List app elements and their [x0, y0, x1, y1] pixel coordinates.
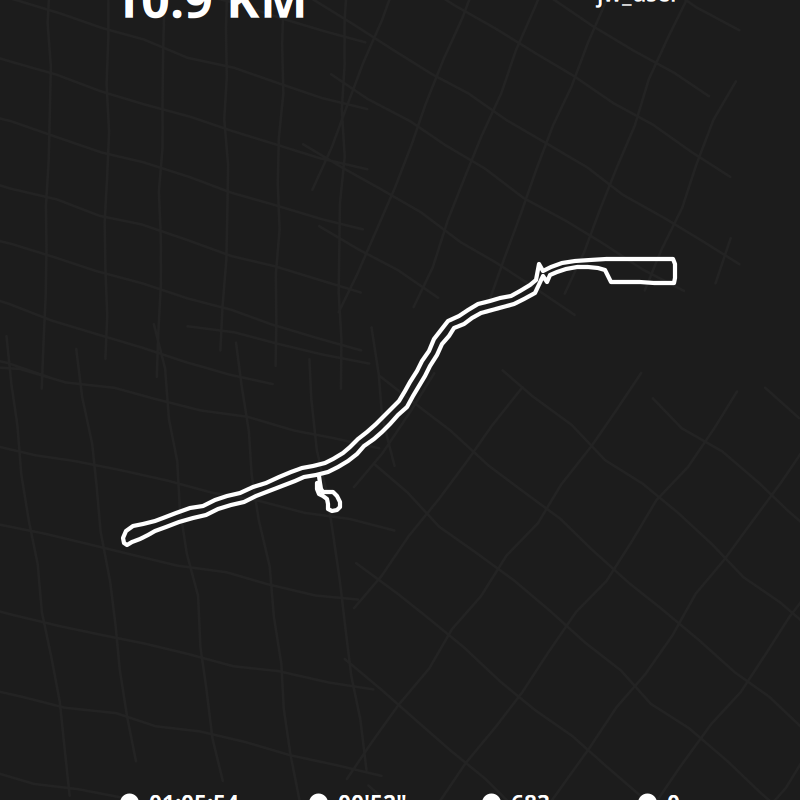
staticText: 0 — [667, 788, 680, 800]
staticText: 00'52" — [338, 788, 407, 800]
staticText: 683 — [511, 788, 550, 800]
staticText: 10.9 KM — [112, 0, 308, 32]
staticText: 01:05:54 — [149, 788, 239, 800]
staticText: jw_user — [597, 0, 680, 8]
